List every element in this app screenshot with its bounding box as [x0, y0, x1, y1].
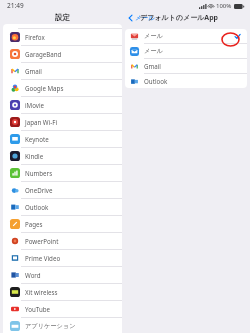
button[interactable]: Pages: [6, 216, 119, 232]
button[interactable]: Outlook: [6, 199, 119, 215]
button[interactable]: iMovie: [6, 97, 119, 113]
staticText: Gmail: [144, 62, 241, 70]
button[interactable]: Japan Wi-Fi: [6, 114, 119, 130]
staticText: Kindle: [25, 152, 44, 160]
button[interactable]: Keynote: [6, 131, 119, 147]
staticText: PowerPoint: [25, 237, 59, 245]
staticText: Outlook: [25, 203, 49, 211]
button[interactable]: Firefox: [6, 29, 119, 45]
button[interactable]: Kindle: [6, 148, 119, 164]
staticText: Pages: [25, 220, 43, 228]
button[interactable]: Xit wireless: [6, 284, 119, 300]
staticText: Google Maps: [25, 84, 64, 92]
staticText: Outlook: [144, 77, 241, 85]
staticText: Word: [25, 271, 41, 279]
button[interactable]: Word: [6, 267, 119, 283]
staticText: 100%: [216, 2, 232, 10]
button[interactable]: Gmail: [6, 63, 119, 79]
button[interactable]: アプリケーション: [6, 318, 119, 333]
button[interactable]: Google Maps: [6, 80, 119, 96]
staticText: Keynote: [25, 135, 49, 143]
staticText: Japan Wi-Fi: [25, 118, 58, 126]
button[interactable]: メール: [125, 44, 247, 58]
staticText: Numbers: [25, 169, 53, 177]
button[interactable]: メール: [125, 29, 247, 43]
staticText: OneDrive: [25, 186, 53, 194]
staticText: メール: [135, 14, 155, 22]
staticText: Gmail: [25, 67, 42, 75]
button[interactable]: Numbers: [6, 165, 119, 181]
staticText: iMovie: [25, 101, 45, 109]
staticText: 21:49: [7, 1, 24, 10]
staticText: アプリケーション: [25, 322, 76, 330]
button[interactable]: GarageBand: [6, 46, 119, 62]
staticText: Firefox: [25, 33, 45, 41]
staticText: Prime Video: [25, 254, 61, 262]
staticText: デフォルトのメールApp: [140, 13, 219, 23]
button[interactable]: 戻る: [128, 14, 155, 22]
button[interactable]: OneDrive: [6, 182, 119, 198]
staticText: メール: [144, 47, 241, 55]
staticText: GarageBand: [25, 50, 62, 58]
button[interactable]: Gmail: [125, 59, 247, 73]
staticText: メール: [144, 32, 234, 40]
staticText: Xit wireless: [25, 288, 58, 296]
staticText: YouTube: [25, 305, 51, 313]
other: 戻る: [128, 14, 133, 22]
staticText: 設定: [55, 13, 70, 22]
button[interactable]: Outlook: [125, 74, 247, 88]
button[interactable]: YouTube: [6, 301, 119, 317]
button[interactable]: Prime Video: [6, 250, 119, 266]
button[interactable]: PowerPoint: [6, 233, 119, 249]
